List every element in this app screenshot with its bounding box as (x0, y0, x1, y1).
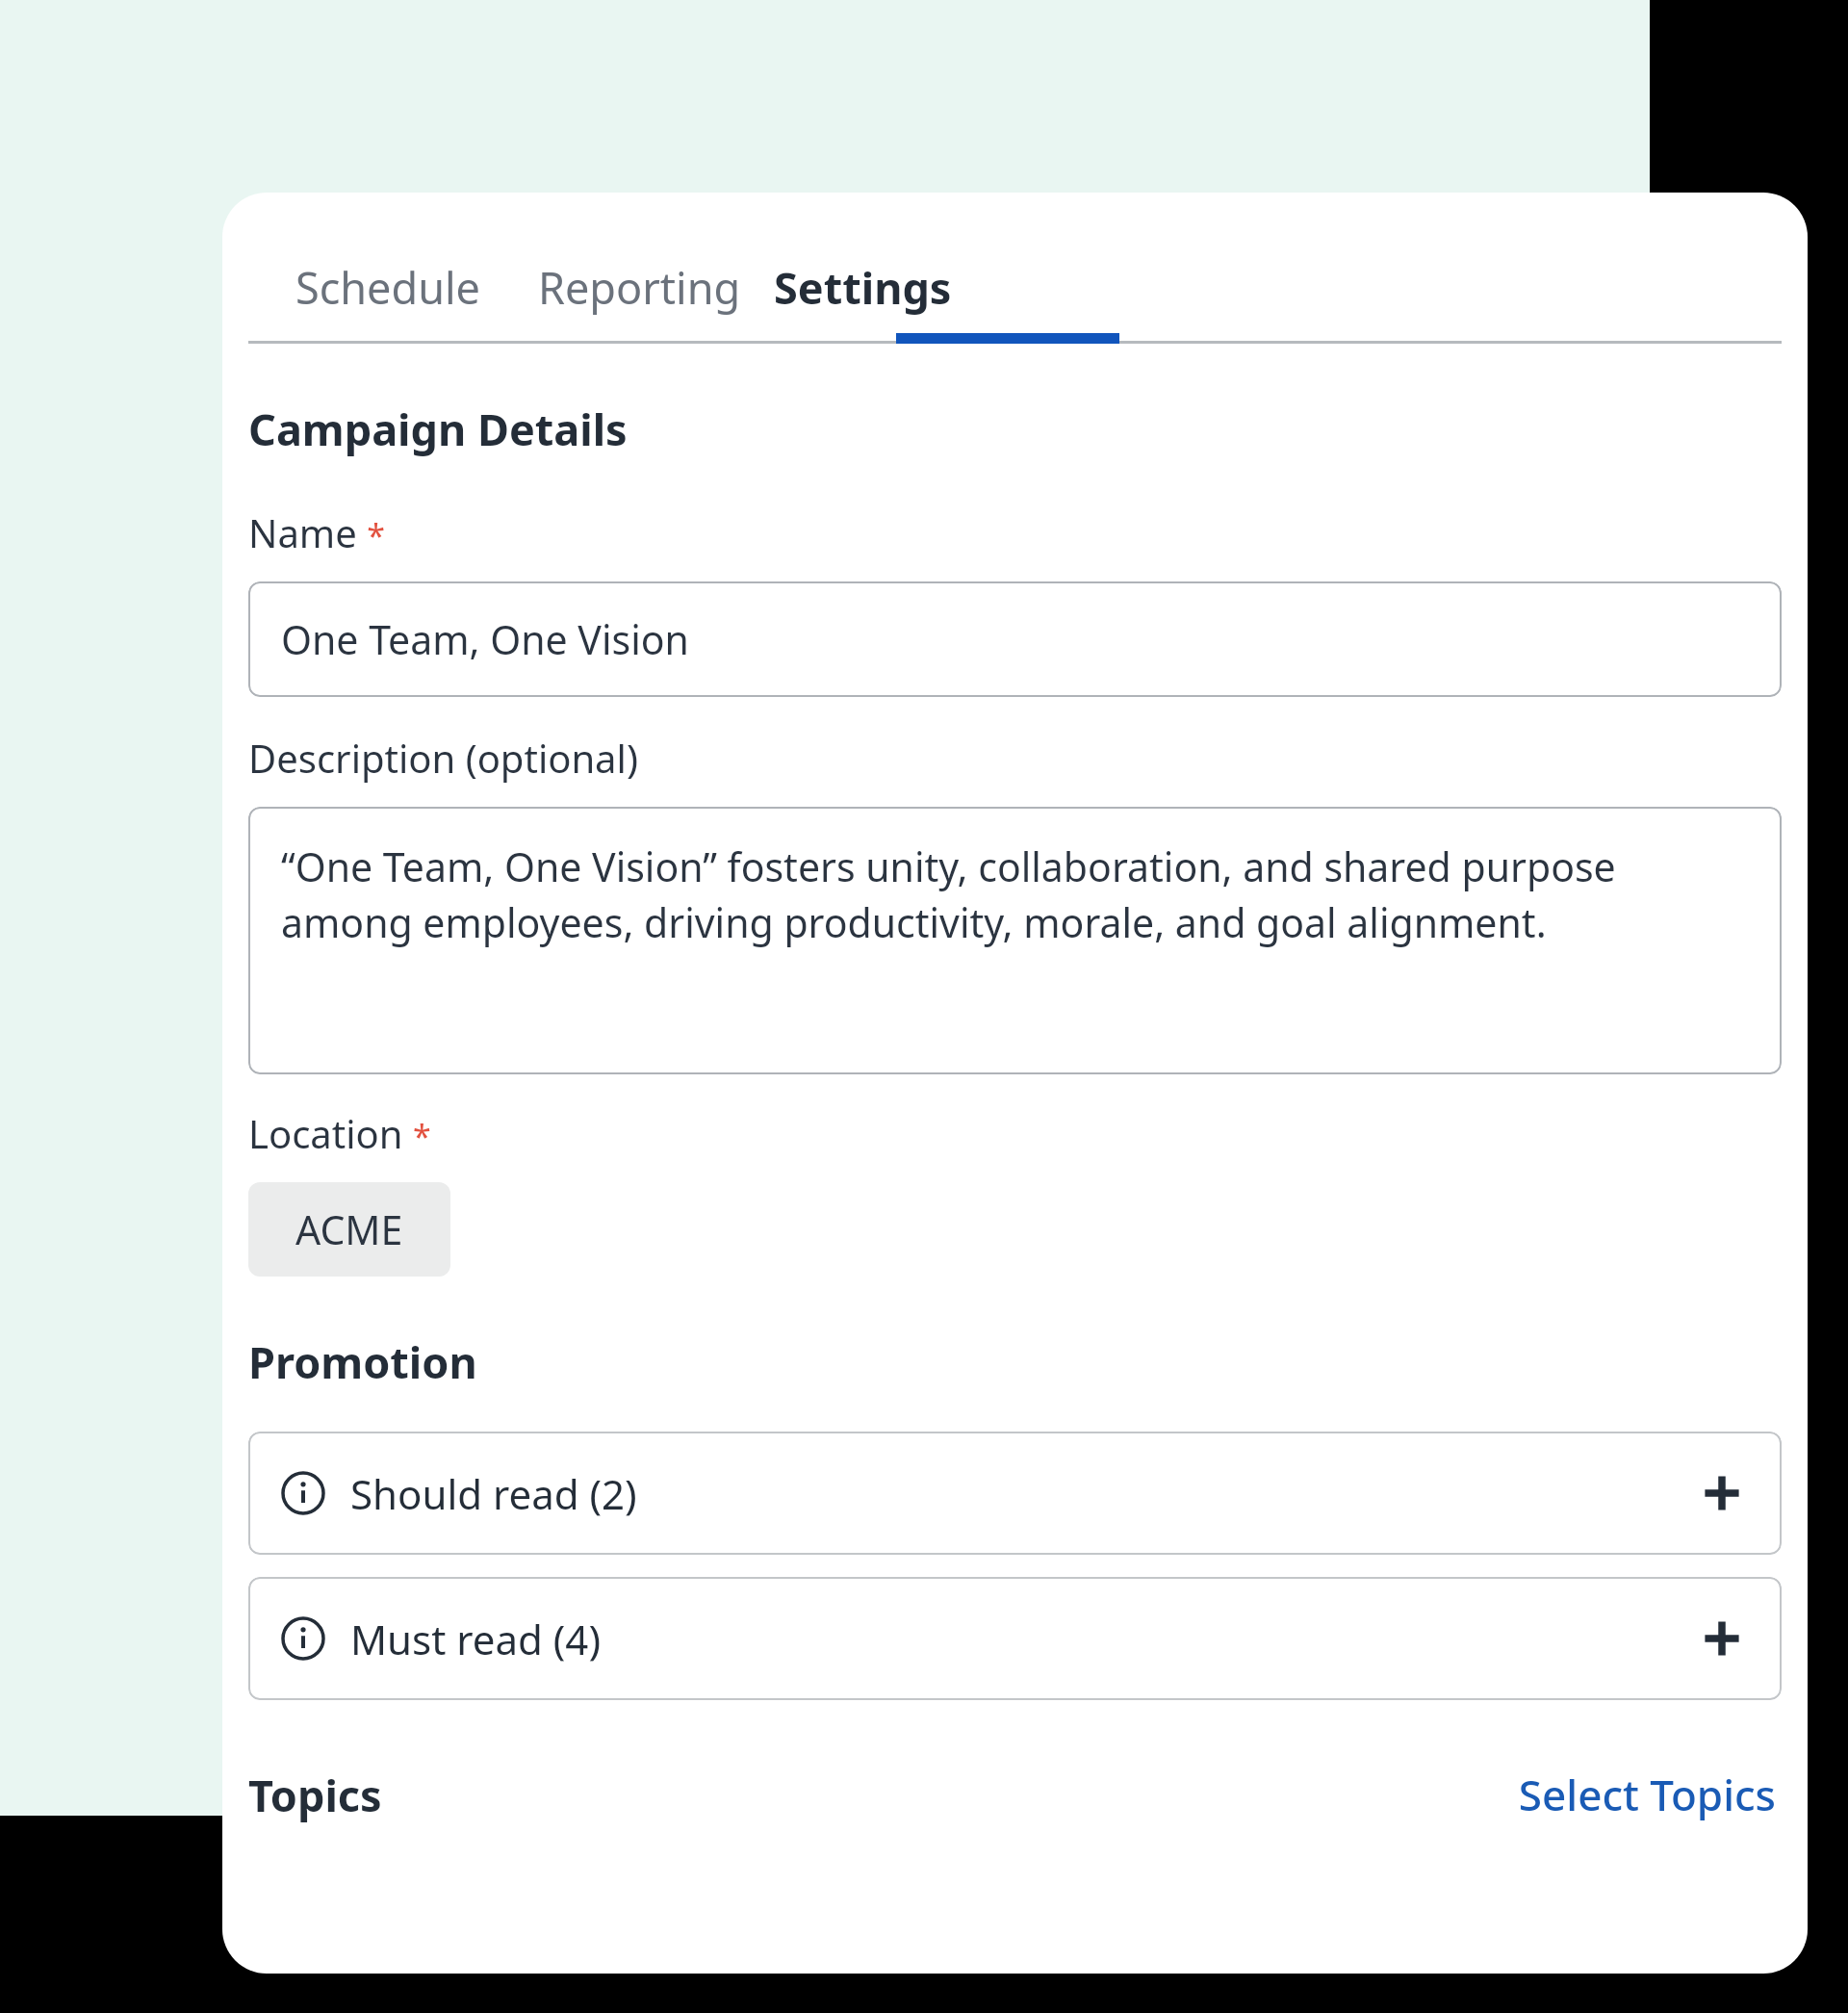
staticText: Schedule (295, 258, 480, 317)
button[interactable]: “One Team, One Vision” fosters unity, co… (248, 807, 1782, 1074)
staticText: ACME (295, 1202, 403, 1256)
button[interactable]: Information (248, 1432, 1782, 1555)
button[interactable]: One Team, One Vision (248, 581, 1782, 697)
staticText: Select Topics (1518, 1766, 1776, 1823)
staticText: Description (optional) (248, 732, 638, 784)
staticText: Must read (4) (350, 1612, 601, 1666)
other: Information (281, 1616, 325, 1661)
staticText: Location * (248, 1107, 431, 1159)
staticText: “One Team, One Vision” fosters unity, co… (281, 839, 1749, 949)
button[interactable]: ACME (248, 1182, 450, 1277)
staticText: Reporting (538, 258, 741, 317)
button[interactable]: Select Topics (1512, 1758, 1782, 1831)
button[interactable]: Settings (751, 241, 974, 333)
other: Information (281, 1471, 325, 1515)
button[interactable]: Add (1695, 1612, 1749, 1665)
button[interactable]: Reporting (527, 241, 751, 333)
staticText: Settings (774, 258, 952, 317)
staticText: Name * (248, 506, 385, 558)
staticText: Campaign Details (248, 400, 628, 458)
staticText: One Team, One Vision (281, 612, 689, 666)
button[interactable]: Information (248, 1577, 1782, 1700)
staticText: Promotion (248, 1332, 477, 1391)
staticText: Should read (2) (350, 1466, 637, 1521)
button[interactable]: Schedule (248, 241, 527, 333)
button[interactable]: Add (1695, 1466, 1749, 1520)
staticText: Topics (248, 1766, 382, 1824)
